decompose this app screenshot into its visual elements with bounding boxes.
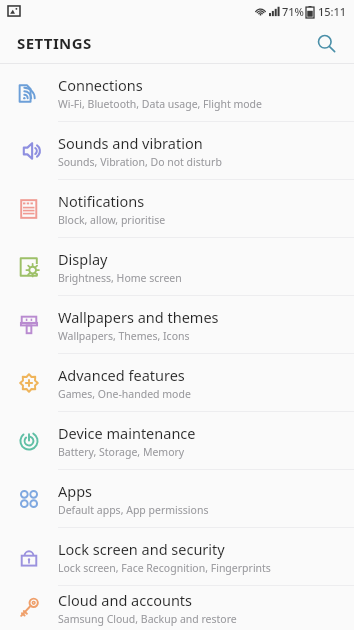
button[interactable]: Notifications (0, 180, 354, 237)
button[interactable]: Sounds and vibration (0, 122, 354, 179)
staticText: Cloud and accounts (58, 590, 193, 610)
button[interactable]: Cloud and accounts (0, 586, 354, 630)
staticText: Wallpapers and themes (58, 307, 219, 327)
staticText: Sounds, Vibration, Do not disturb (58, 155, 222, 169)
staticText: 71% (282, 4, 304, 19)
staticText: Wi-Fi, Bluetooth, Data usage, Flight mod… (58, 97, 263, 111)
staticText: Wallpapers, Themes, Icons (58, 329, 190, 343)
staticText: Brightness, Home screen (58, 271, 182, 285)
button[interactable]: Connections (0, 64, 354, 121)
staticText: Sounds and vibration (58, 133, 203, 153)
staticText: Lock screen, Face Recognition, Fingerpri… (58, 561, 271, 575)
button[interactable]: Device maintenance (0, 412, 354, 469)
staticText: Games, One-handed mode (58, 387, 191, 401)
staticText: 15:11 (318, 4, 347, 19)
staticText: Device maintenance (58, 423, 196, 443)
staticText: SETTINGS (17, 33, 92, 53)
staticText: Apps (58, 481, 93, 501)
staticText: Samsung Cloud, Backup and restore (58, 612, 237, 626)
staticText: Block, allow, prioritise (58, 213, 166, 227)
staticText: Lock screen and security (58, 539, 225, 559)
staticText: Battery, Storage, Memory (58, 445, 185, 459)
button[interactable]: Wallpapers and themes (0, 296, 354, 353)
staticText: Display (58, 249, 108, 269)
button[interactable]: Display (0, 238, 354, 295)
button[interactable]: Lock screen and security (0, 528, 354, 585)
staticText: Advanced features (58, 365, 185, 385)
button[interactable]: Search (307, 24, 345, 62)
staticText: Connections (58, 75, 143, 95)
staticText: Default apps, App permissions (58, 503, 209, 517)
staticText: Notifications (58, 191, 145, 211)
button[interactable]: Advanced features (0, 354, 354, 411)
button[interactable]: Apps (0, 470, 354, 527)
